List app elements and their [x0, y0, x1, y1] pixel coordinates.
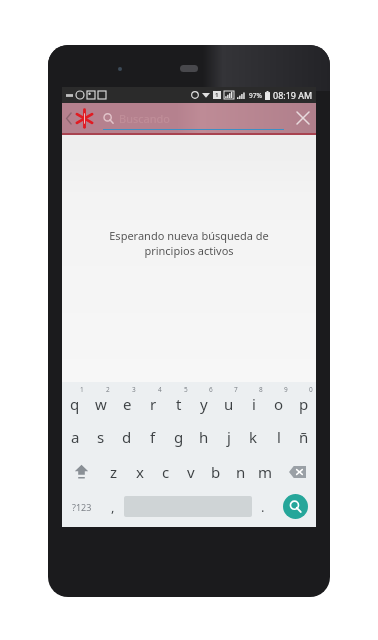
staticText: c [162, 462, 170, 482]
button[interactable]: j [216, 419, 241, 454]
staticText: h [199, 427, 209, 447]
staticText: b [211, 462, 221, 482]
staticText: n [236, 462, 246, 482]
staticText: 8 [259, 385, 263, 394]
button[interactable]: 2 [88, 384, 114, 419]
staticText: e [123, 394, 132, 414]
staticText: u [224, 394, 234, 414]
staticText: j [227, 427, 231, 447]
button[interactable]: ñ [291, 419, 316, 454]
staticText: y [200, 394, 208, 414]
button[interactable]: c [153, 454, 178, 489]
staticText: l [277, 427, 281, 447]
button[interactable]: Buscando [103, 103, 284, 133]
staticText: o [274, 394, 284, 414]
staticText: , [111, 498, 115, 516]
button[interactable]: 7 [216, 384, 241, 419]
button[interactable]: Shift [62, 454, 101, 489]
button[interactable]: 6 [191, 384, 216, 419]
button[interactable]: v [178, 454, 203, 489]
button[interactable]: f [140, 419, 166, 454]
button[interactable]: z [101, 454, 127, 489]
staticText: z [110, 462, 118, 482]
staticText: 6 [209, 385, 213, 394]
staticText: p [299, 394, 309, 414]
button[interactable]: 5 [166, 384, 191, 419]
staticText: 1 [80, 385, 84, 394]
staticText: 9 [284, 385, 288, 394]
button[interactable]: a [62, 419, 88, 454]
staticText: d [122, 427, 132, 447]
staticText: w [95, 394, 107, 414]
button[interactable]: s [88, 419, 114, 454]
button[interactable]: ?123 [62, 489, 102, 524]
button[interactable]: h [191, 419, 216, 454]
button[interactable]: 3 [114, 384, 140, 419]
button[interactable]: Backspace [278, 454, 316, 489]
staticText: 1 [215, 91, 219, 99]
staticText: i [252, 394, 256, 414]
staticText: ?123 [72, 501, 92, 513]
staticText: q [70, 394, 80, 414]
button[interactable]: . [252, 489, 274, 524]
button[interactable]: m [253, 454, 278, 489]
button[interactable]: d [114, 419, 140, 454]
staticText: t [176, 394, 182, 414]
button[interactable]: Close search [290, 103, 316, 133]
staticText: r [150, 394, 157, 414]
staticText: 5 [184, 385, 188, 394]
staticText: x [136, 462, 144, 482]
button[interactable]: Search [283, 494, 308, 519]
button[interactable]: g [166, 419, 191, 454]
button[interactable]: 4 [140, 384, 166, 419]
staticText: 4 [158, 385, 162, 394]
staticText: k [249, 427, 258, 447]
button[interactable]: 9 [266, 384, 291, 419]
button[interactable]: , [102, 489, 124, 524]
staticText: 7 [234, 385, 238, 394]
staticText: 0 [309, 385, 313, 394]
staticText: Buscando [119, 111, 170, 126]
button[interactable]: 8 [241, 384, 266, 419]
staticText: a [71, 427, 80, 447]
staticText: s [97, 427, 105, 447]
button[interactable]: k [241, 419, 266, 454]
staticText: Esperando nueva búsqueda de principios a… [109, 228, 269, 258]
button[interactable]: 0 [291, 384, 316, 419]
staticText: v [187, 462, 195, 482]
button[interactable]: Back [62, 103, 96, 133]
staticText: f [150, 427, 156, 447]
staticText: 3 [132, 385, 136, 394]
staticText: 08:19 AM [273, 89, 313, 101]
staticText: m [258, 462, 273, 482]
button[interactable]: l [266, 419, 291, 454]
button[interactable]: b [203, 454, 228, 489]
staticText: 97% [249, 91, 262, 100]
staticText: g [174, 427, 184, 447]
button[interactable]: 1 [62, 384, 88, 419]
button[interactable]: n [228, 454, 253, 489]
staticText: . [261, 498, 265, 516]
staticText: 2 [106, 385, 110, 394]
button[interactable]: x [127, 454, 153, 489]
staticText: ñ [299, 427, 309, 447]
